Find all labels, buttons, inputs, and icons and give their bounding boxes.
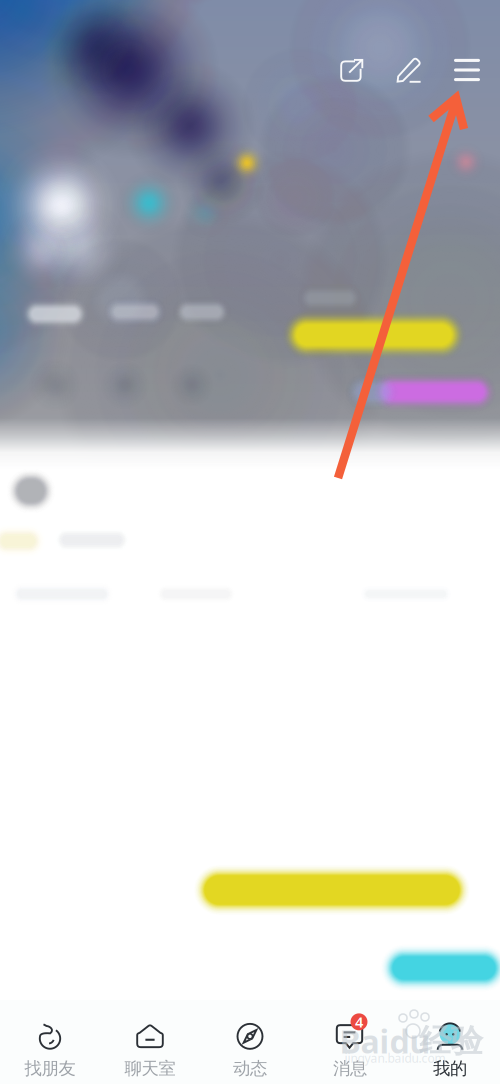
- button[interactable]: 找朋友: [0, 1003, 100, 1081]
- button[interactable]: 4: [300, 1003, 400, 1081]
- button[interactable]: 我的: [400, 1003, 500, 1081]
- button[interactable]: 聊天室: [100, 1003, 200, 1081]
- button[interactable]: 动态: [200, 1003, 300, 1081]
- button[interactable]: Edit: [387, 48, 431, 92]
- staticText: 经验: [419, 1021, 483, 1061]
- staticText: 我的: [433, 1058, 467, 1079]
- staticText: 4: [355, 1012, 363, 1032]
- staticText: Baidu: [339, 1020, 430, 1062]
- staticText: 消息: [333, 1058, 367, 1079]
- staticText: 聊天室: [124, 1058, 175, 1079]
- button[interactable]: Share: [329, 48, 373, 92]
- staticText: 找朋友: [24, 1058, 75, 1079]
- staticText: 动态: [233, 1058, 267, 1079]
- button[interactable]: Menu: [445, 48, 489, 92]
- staticText: jingyan.baidu.com: [344, 1050, 445, 1066]
